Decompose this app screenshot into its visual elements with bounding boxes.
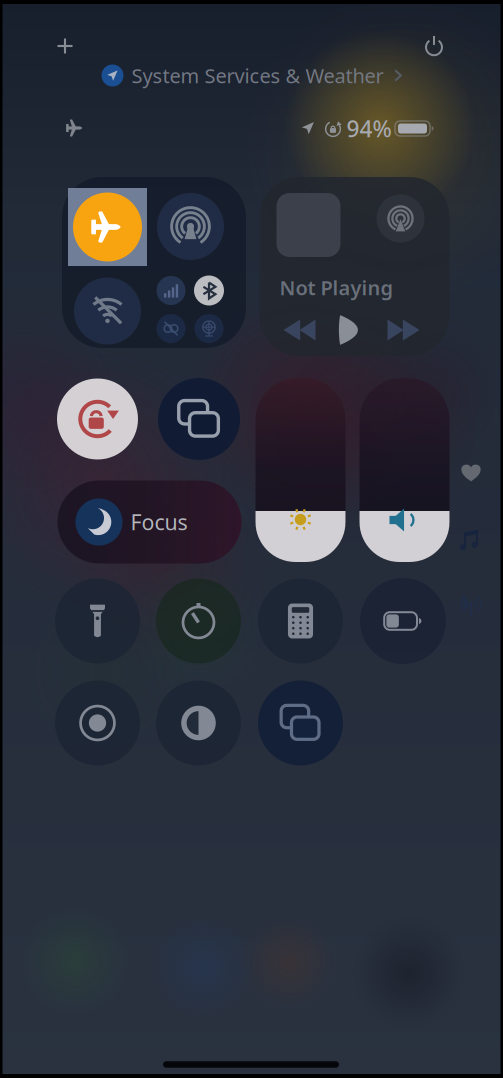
button[interactable]: AirDrop xyxy=(157,193,224,260)
button[interactable]: AirPlay xyxy=(376,194,424,242)
button[interactable]: Next xyxy=(387,319,419,340)
staticText: Not Playing xyxy=(279,274,393,301)
button[interactable]: Personal Hotspot xyxy=(156,314,185,343)
button[interactable]: Screen Recording xyxy=(55,680,140,765)
button[interactable]: Rotation Lock xyxy=(57,378,138,459)
button[interactable]: Calculator xyxy=(258,578,343,663)
button[interactable]: Play xyxy=(337,314,368,345)
button[interactable]: Brightness xyxy=(255,378,345,562)
button[interactable]: Bluetooth xyxy=(194,275,224,305)
button[interactable]: Cellular Data xyxy=(156,276,185,305)
button[interactable]: VPN xyxy=(194,314,223,343)
button[interactable]: Power xyxy=(418,30,450,62)
button[interactable]: Screen Mirroring xyxy=(158,378,240,460)
staticText: 94% xyxy=(346,113,391,143)
button[interactable]: Flashlight xyxy=(55,578,140,663)
button[interactable]: Low Power Mode xyxy=(360,578,446,664)
staticText: Focus xyxy=(130,508,187,536)
button[interactable]: Screen Mirroring xyxy=(258,680,343,765)
button[interactable]: Previous xyxy=(283,319,315,340)
button[interactable]: Volume xyxy=(359,378,449,562)
button[interactable]: Airplane Mode xyxy=(73,192,142,261)
button[interactable]: Add Control xyxy=(49,30,81,62)
button[interactable]: Focus xyxy=(57,480,241,563)
staticText: System Services & Weather xyxy=(131,62,383,89)
button[interactable]: Wi-Fi xyxy=(74,277,141,344)
button[interactable]: System Services & Weather xyxy=(101,62,404,89)
button[interactable]: Timer xyxy=(156,578,241,663)
button[interactable]: Dark Mode xyxy=(156,680,241,765)
